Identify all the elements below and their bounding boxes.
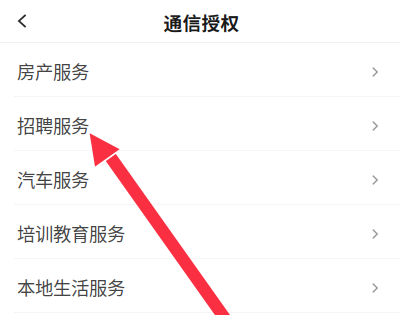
staticText: 本地生活服务 (17, 274, 125, 300)
button[interactable]: Back (0, 0, 52, 42)
button[interactable]: 汽车服务 (0, 151, 400, 205)
staticText: 通信授权 (163, 8, 239, 35)
button[interactable]: 培训教育服务 (0, 205, 400, 259)
staticText: 招聘服务 (17, 112, 89, 138)
button[interactable]: 本地生活服务 (0, 259, 400, 313)
staticText: 培训教育服务 (17, 220, 125, 246)
button[interactable]: 房产服务 (0, 43, 400, 97)
button[interactable]: 招聘服务 (0, 97, 400, 151)
staticText: 汽车服务 (17, 166, 89, 192)
staticText: 房产服务 (17, 58, 89, 84)
